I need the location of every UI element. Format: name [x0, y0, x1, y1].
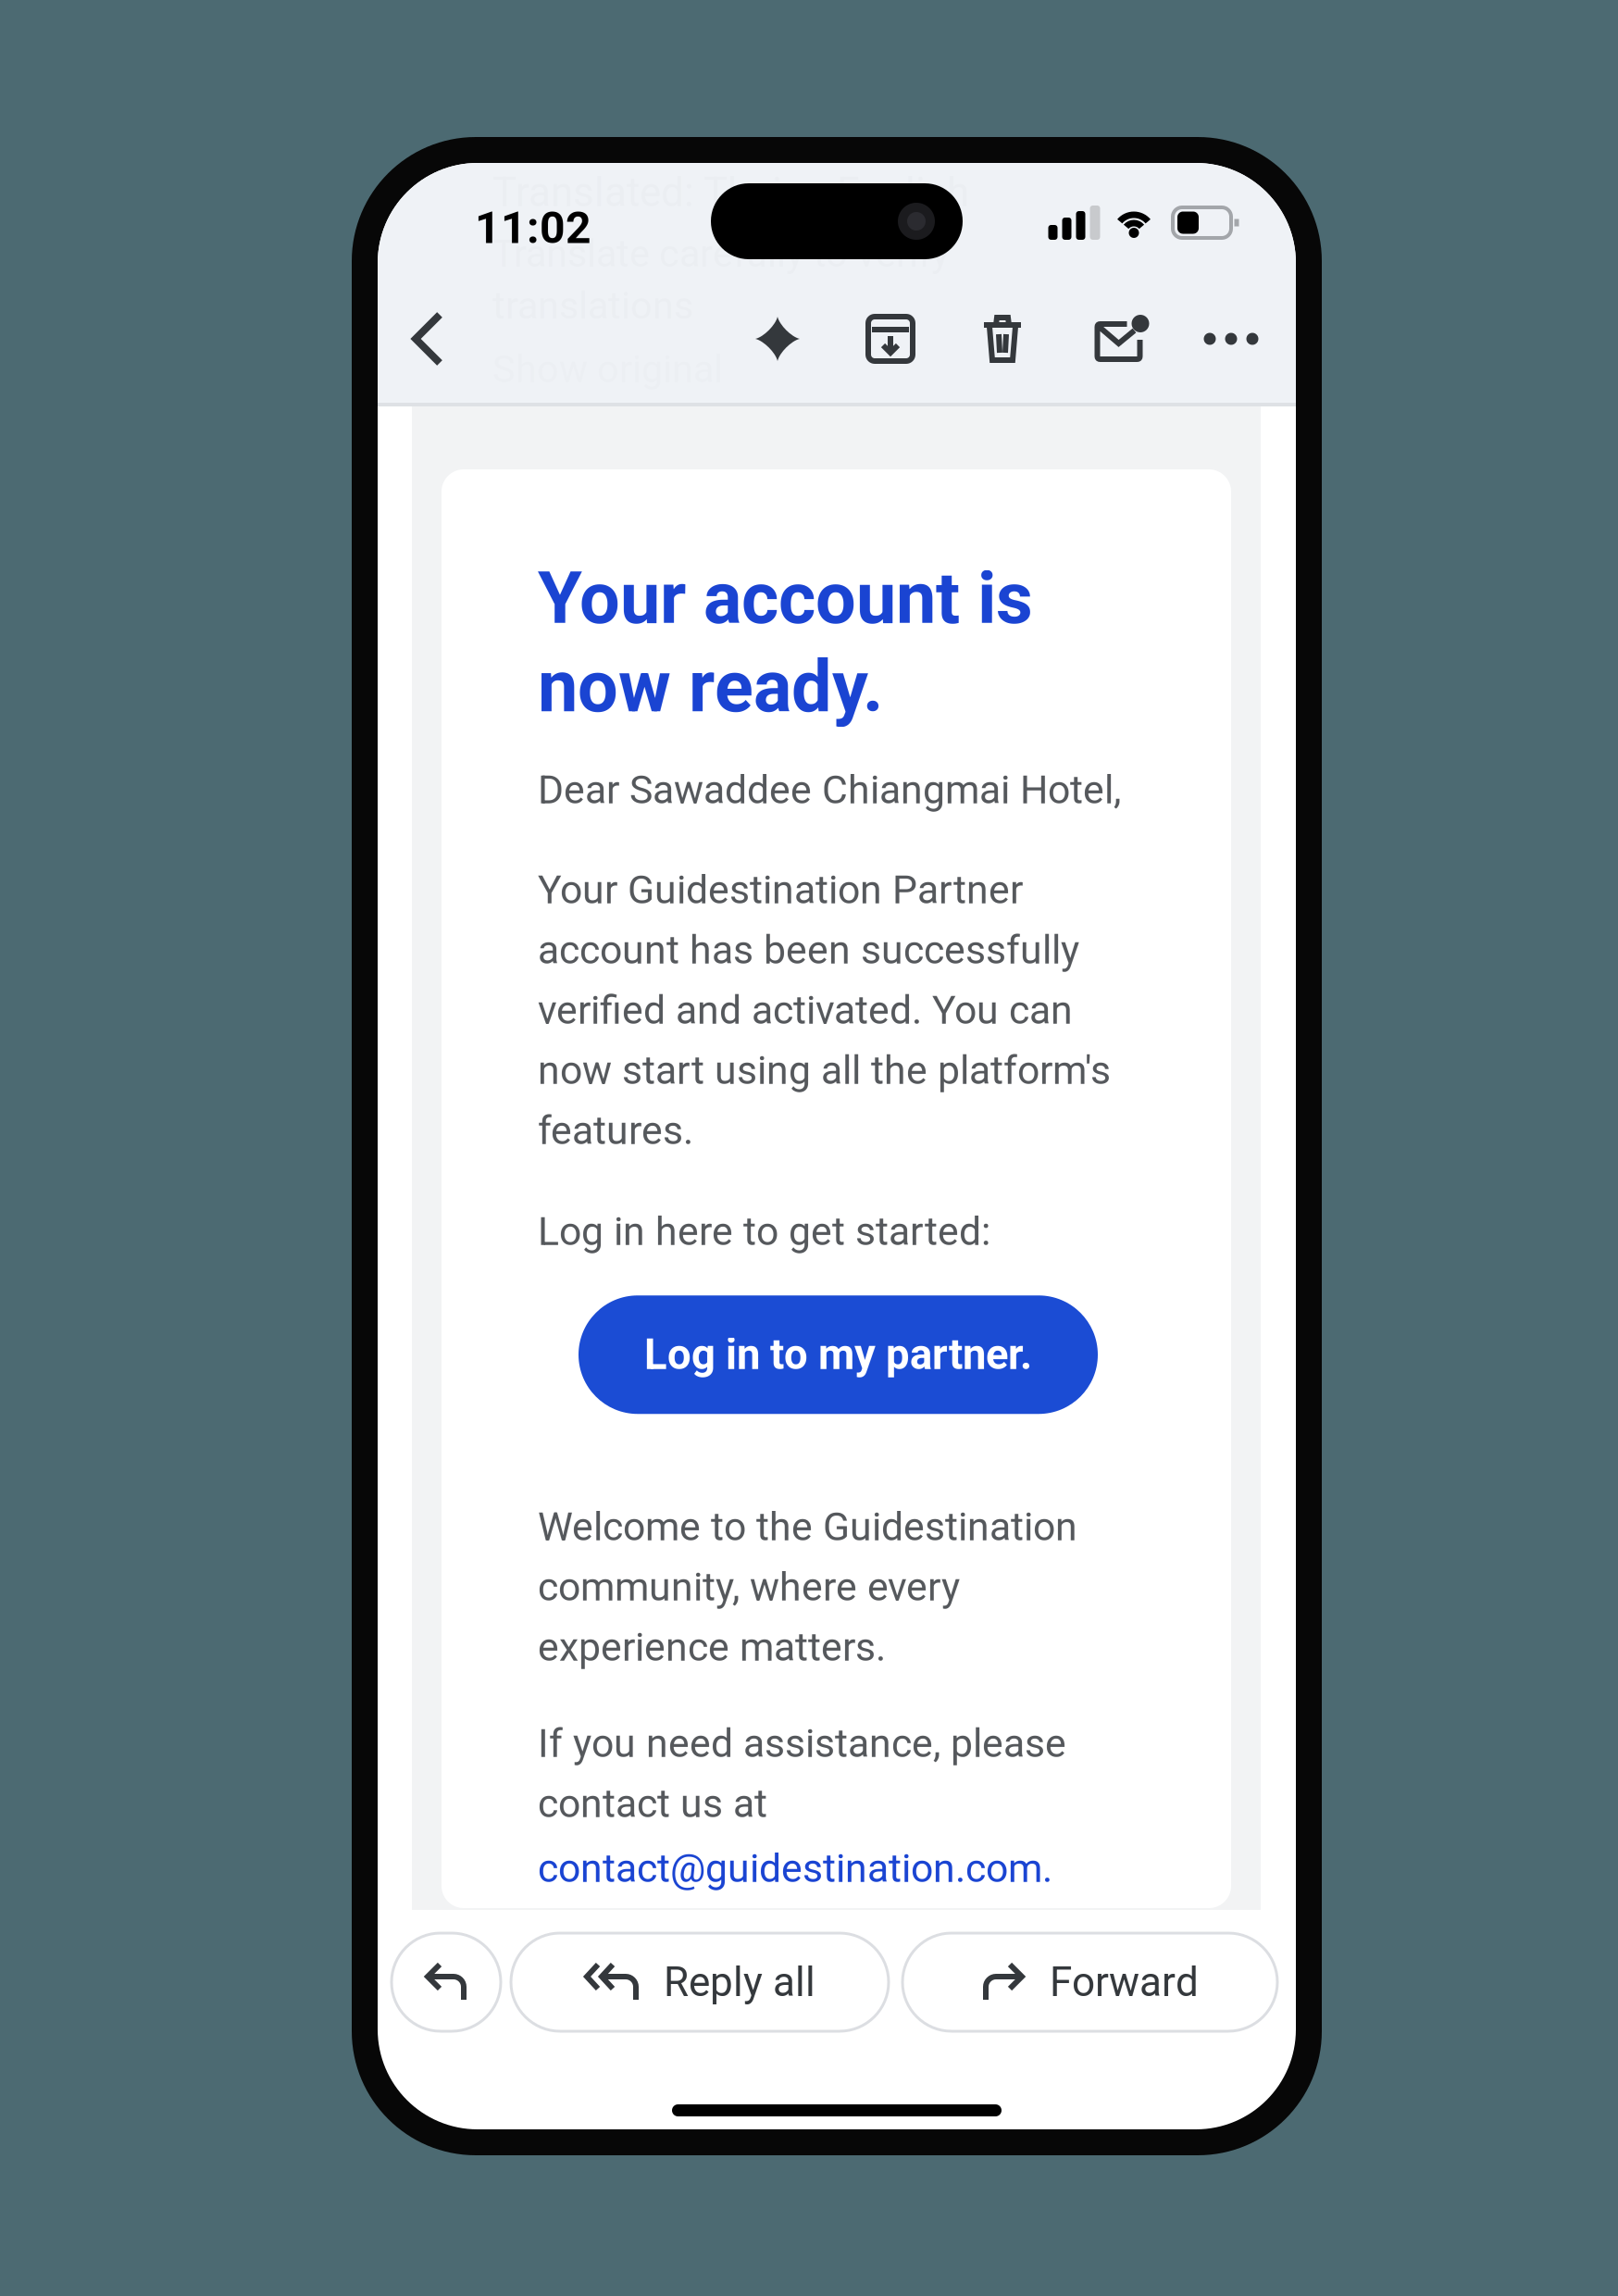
- staticText: Log in here to get started:: [538, 1208, 990, 1255]
- button[interactable]: Log in to my partner.: [579, 1295, 1098, 1414]
- button[interactable]: More options: [1180, 288, 1282, 390]
- button[interactable]: Back: [377, 288, 479, 390]
- staticText: Your Guidestination Partner account has …: [538, 867, 1111, 1154]
- staticText: Translated: Thai → English: [492, 168, 969, 216]
- button[interactable]: Summarize with Gemini: [727, 288, 828, 390]
- button[interactable]: Mark as unread: [1071, 288, 1173, 390]
- staticText: Welcome to the Guidestination community,…: [538, 1504, 1077, 1670]
- staticText: contact@guidestination.com.: [538, 1845, 1052, 1892]
- staticText: Forward: [1050, 1958, 1199, 2006]
- button[interactable]: Reply: [392, 1933, 501, 2031]
- button[interactable]: Delete: [952, 288, 1053, 390]
- staticText: Log in to my partner.: [644, 1330, 1032, 1379]
- staticText: If you need assistance, please contact u…: [538, 1720, 1066, 1827]
- staticText: Reply all: [664, 1958, 815, 2006]
- staticText: Translate carefully to verify translatio…: [492, 231, 950, 328]
- staticText: Your account is now ready.: [538, 556, 1033, 729]
- button[interactable]: Archive: [840, 288, 941, 390]
- staticText: Dear Sawaddee Chiangmai Hotel,: [538, 767, 1121, 813]
- button[interactable]: Reply all: [511, 1933, 889, 2031]
- button[interactable]: Forward: [902, 1933, 1277, 2031]
- button[interactable]: contact@guidestination.com.: [538, 1845, 1052, 1892]
- staticText: 11:02: [475, 202, 591, 254]
